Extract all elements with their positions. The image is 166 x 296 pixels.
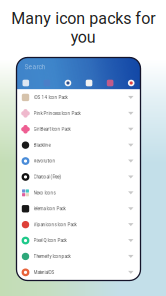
button[interactable]: Pink Princess Icon Pack [16,105,140,121]
staticText: Themeify Iconpack [33,254,70,259]
staticText: Pink Princess Icon Pack [33,111,80,116]
button[interactable]: iOS 14 Icon Pack [16,89,140,105]
button[interactable]: Nexo Icons [16,185,140,201]
button[interactable]: Themeify Iconpack [16,248,140,264]
staticText: Blackline [33,142,50,148]
staticText: iOS 14 Icon Pack [33,95,67,100]
staticText: Nexo Icons [33,190,55,195]
button[interactable]: Ielema Icon Pack [16,201,140,217]
staticText: Charcoal (Free) [33,174,61,180]
staticText: MaterialOS [33,270,54,275]
staticText: Vipanicons Icon Pack [33,222,76,227]
staticText: Ielema Icon Pack [33,206,65,211]
staticText: Pixel Q Icon Pack [33,238,66,243]
button[interactable]: Pixel Q Icon Pack [16,233,140,248]
staticText: Revolution [33,158,55,164]
button[interactable]: MaterialOS [16,264,140,280]
button[interactable]: Blackline [16,137,140,153]
button[interactable]: GirlBeart Icon Pack [16,121,140,137]
button[interactable]: Vipanicons Icon Pack [16,217,140,233]
staticText: GirlBeart Icon Pack [33,127,70,132]
staticText: Many icon packs for you [11,9,155,47]
button[interactable]: Revolution [16,153,140,169]
button[interactable]: Charcoal (Free) [16,169,140,185]
staticText: Search [24,63,45,71]
